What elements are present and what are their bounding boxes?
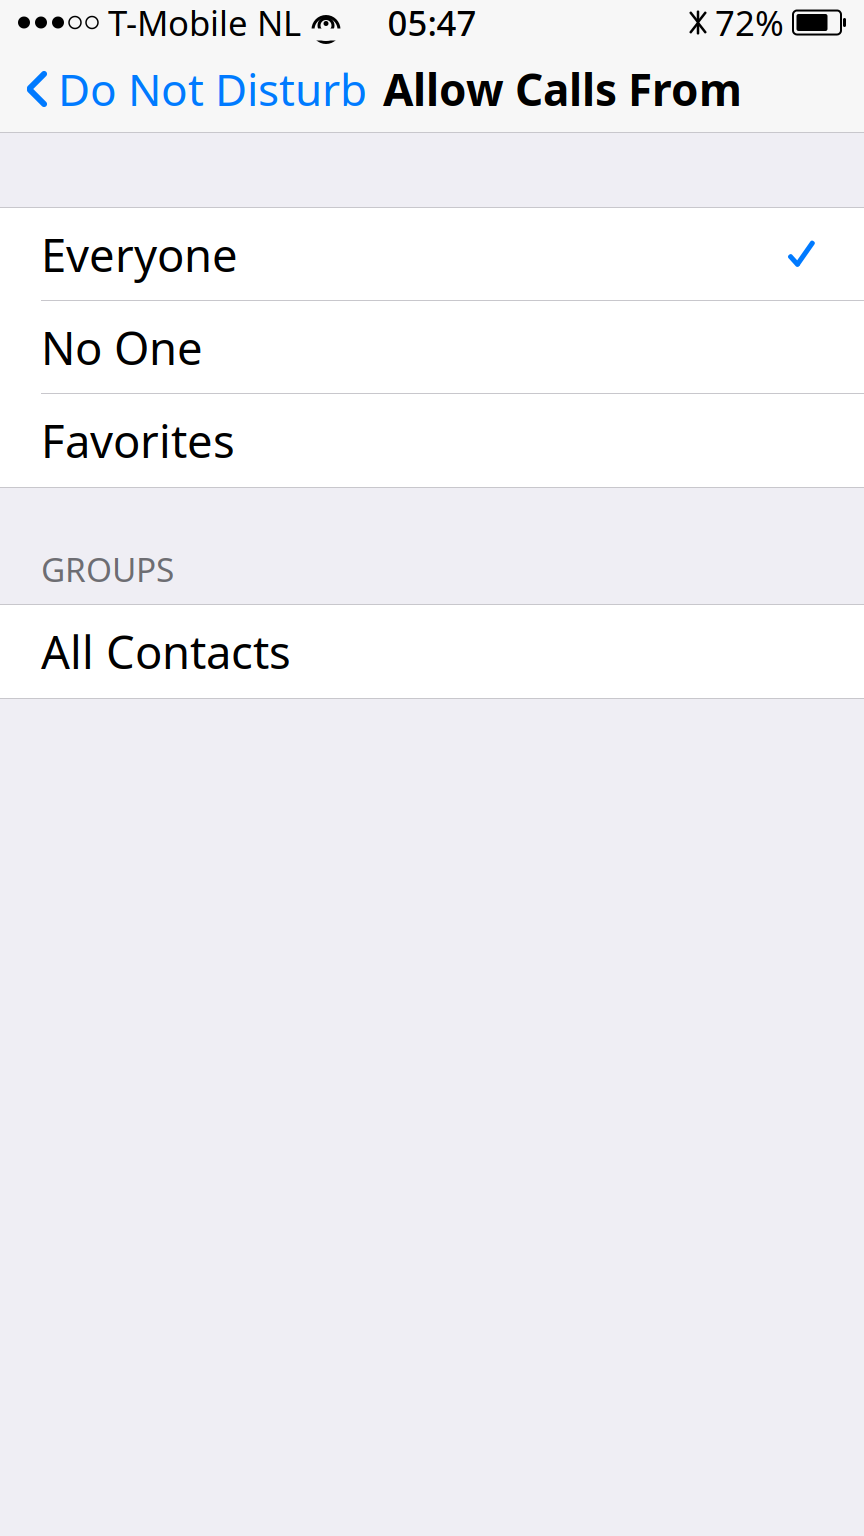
button[interactable]: Everyone <box>0 208 864 301</box>
staticText: Allow Calls From <box>383 60 742 118</box>
staticText: Do Not Disturb <box>58 60 367 118</box>
staticText: T-Mobile NL <box>108 0 301 45</box>
staticText: Favorites <box>41 410 235 471</box>
button[interactable]: Do Not Disturb <box>0 45 375 133</box>
staticText: 05:47 <box>387 0 476 45</box>
staticText: No One <box>41 317 203 378</box>
staticText: GROUPS <box>41 547 174 591</box>
staticText: All Contacts <box>41 621 291 682</box>
staticText: 72% <box>715 0 784 45</box>
button[interactable]: All Contacts <box>0 605 864 698</box>
staticText: Everyone <box>41 224 238 285</box>
button[interactable]: No One <box>0 301 864 394</box>
button[interactable]: Favorites <box>0 394 864 487</box>
